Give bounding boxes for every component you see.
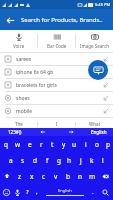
- staticText: l: [102, 156, 104, 165]
- staticText: z: [18, 172, 22, 181]
- button[interactable]: m: [86, 168, 98, 184]
- button[interactable]: Remove mobile: [0, 105, 16, 117]
- button[interactable]: e: [24, 136, 36, 152]
- staticText: m: [89, 172, 96, 181]
- button[interactable]: Voice: [0, 30, 37, 52]
- button[interactable]: y: [58, 136, 69, 152]
- button[interactable]: Image Search: [76, 30, 113, 52]
- staticText: h: [67, 156, 72, 165]
- staticText: What: [89, 121, 101, 127]
- staticText: f: [46, 156, 49, 165]
- staticText: d: [33, 156, 37, 165]
- button[interactable]: c: [38, 168, 50, 184]
- staticText: j: [80, 156, 82, 165]
- staticText: i: [85, 140, 87, 149]
- button[interactable]: Insert mobile: [99, 105, 113, 117]
- button[interactable]: i: [80, 136, 91, 152]
- staticText: 123#(): [8, 129, 22, 135]
- button[interactable]: Remove mobile: [0, 105, 113, 117]
- staticText: t: [51, 140, 54, 149]
- button[interactable]: Remove sarees: [0, 53, 113, 65]
- button[interactable]: j: [75, 152, 86, 168]
- button[interactable]: ,: [32, 184, 41, 200]
- staticText: 5:45 PM: [95, 2, 111, 7]
- button[interactable]: Insert shoes: [99, 92, 113, 104]
- staticText: .: [92, 188, 94, 196]
- staticText: x: [30, 172, 34, 181]
- button[interactable]: Shift: [0, 168, 14, 184]
- staticText: n: [78, 172, 83, 181]
- button[interactable]: Remove bracelets for girls: [0, 79, 16, 91]
- button[interactable]: What: [76, 120, 113, 128]
- button[interactable]: Remove shoes: [0, 92, 113, 104]
- button[interactable]: k: [86, 152, 97, 168]
- button[interactable]: w: [12, 136, 24, 152]
- button[interactable]: ?: [23, 184, 32, 200]
- staticText: mobile: [16, 108, 99, 115]
- button[interactable]: o: [91, 136, 102, 152]
- button[interactable]: Move left: [29, 128, 57, 136]
- button[interactable]: s: [17, 152, 29, 168]
- button[interactable]: Insert bracelets for girls: [99, 79, 113, 91]
- staticText: Search for Products, Brands..: [21, 16, 103, 24]
- staticText: p: [106, 140, 110, 149]
- button[interactable]: g: [53, 152, 64, 168]
- button[interactable]: Voice input: [12, 184, 23, 200]
- button[interactable]: z: [14, 168, 26, 184]
- button[interactable]: .: [88, 184, 97, 200]
- button[interactable]: Remove sarees: [0, 53, 16, 65]
- button[interactable]: h: [64, 152, 75, 168]
- staticText: v: [54, 172, 58, 181]
- button[interactable]: x: [26, 168, 38, 184]
- button[interactable]: v: [50, 168, 62, 184]
- button[interactable]: Backspace: [98, 168, 113, 184]
- button[interactable]: Remove iphone 6s 64 gb: [0, 66, 16, 78]
- button[interactable]: English: [85, 128, 113, 136]
- button[interactable]: d: [29, 152, 41, 168]
- button[interactable]: Search: [97, 184, 113, 200]
- button[interactable]: Remove shoes: [0, 92, 16, 104]
- staticText: shoes: [16, 95, 99, 102]
- button[interactable]: The: [0, 120, 37, 128]
- button[interactable]: p: [102, 136, 113, 152]
- staticText: English: [91, 129, 107, 135]
- staticText: y: [62, 140, 66, 149]
- staticText: ,: [36, 188, 38, 196]
- button[interactable]: Remove bracelets for girls: [0, 79, 113, 91]
- button[interactable]: Move right: [57, 128, 85, 136]
- button[interactable]: Insert iphone 6s 64 gb: [99, 66, 113, 78]
- button[interactable]: Emoji: [0, 184, 12, 200]
- staticText: q: [4, 140, 8, 149]
- button[interactable]: l: [97, 152, 108, 168]
- staticText: Voice: [13, 43, 25, 49]
- staticText: English: [58, 188, 72, 193]
- button[interactable]: n: [74, 168, 86, 184]
- button[interactable]: r: [36, 136, 47, 152]
- button[interactable]: u: [69, 136, 80, 152]
- staticText: o: [95, 140, 99, 149]
- staticText: r: [40, 140, 43, 149]
- staticText: g: [57, 156, 61, 165]
- button[interactable]: Remove iphone 6s 64 gb: [0, 66, 113, 78]
- staticText: a: [9, 156, 13, 165]
- staticText: The: [15, 121, 23, 127]
- staticText: Bar Code: [47, 43, 67, 49]
- button[interactable]: Insert sarees: [99, 53, 113, 65]
- button[interactable]: q: [0, 136, 12, 152]
- button[interactable]: Bar Code: [38, 30, 75, 52]
- staticText: iphone 6s 64 gb: [16, 69, 99, 76]
- staticText: w: [15, 140, 21, 149]
- button[interactable]: t: [47, 136, 58, 152]
- staticText: u: [72, 140, 77, 149]
- button[interactable]: 123#(): [0, 128, 29, 136]
- staticText: e: [28, 140, 32, 149]
- staticText: bracelets for girls: [16, 82, 99, 89]
- button[interactable]: Space: [41, 184, 88, 200]
- staticText: b: [66, 172, 70, 181]
- button[interactable]: f: [41, 152, 53, 168]
- button[interactable]: Back: [0, 10, 20, 30]
- button[interactable]: I: [38, 120, 75, 128]
- button[interactable]: a: [5, 152, 17, 168]
- button[interactable]: Chat: [88, 60, 108, 80]
- button[interactable]: b: [62, 168, 74, 184]
